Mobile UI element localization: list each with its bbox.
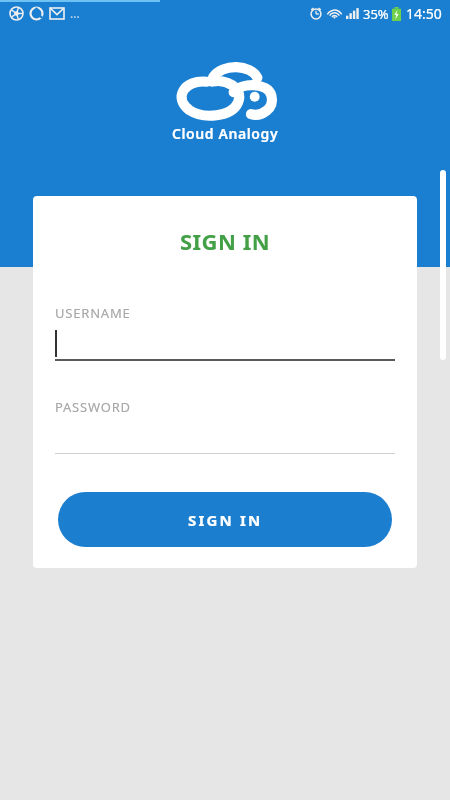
button[interactable]: USERNAME: [55, 304, 395, 361]
staticText: 35%: [363, 5, 389, 23]
button[interactable]: PASSWORD: [55, 398, 395, 454]
staticText: USERNAME: [55, 304, 131, 322]
staticText: Cloud Analogy: [172, 124, 279, 143]
staticText: SIGN IN: [33, 226, 417, 256]
staticText: ...: [70, 5, 80, 21]
staticText: SIGN IN: [188, 510, 263, 530]
staticText: 14:50: [406, 4, 442, 23]
button[interactable]: SIGN IN: [58, 492, 392, 547]
staticText: PASSWORD: [55, 398, 131, 416]
